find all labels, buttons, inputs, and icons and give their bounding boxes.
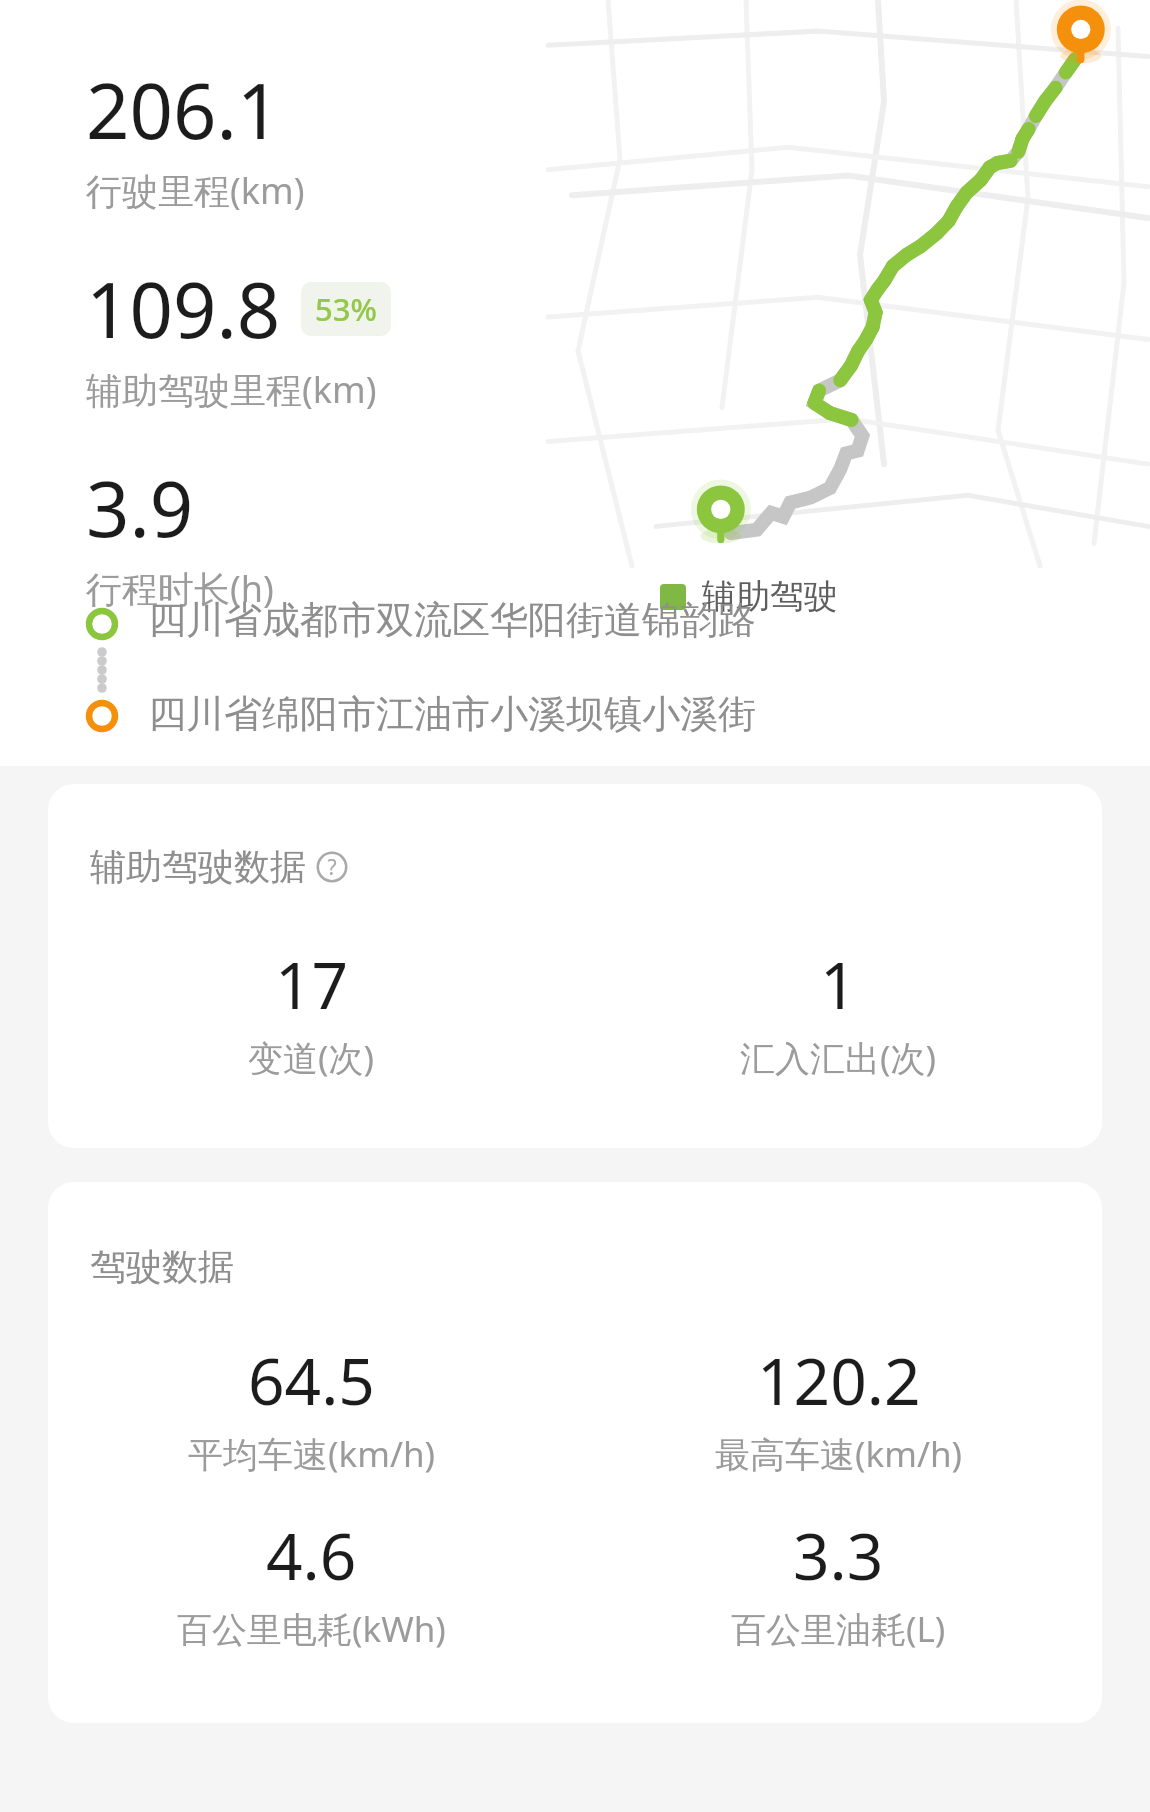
- other: 帮助说明: [316, 851, 348, 883]
- staticText: 辅助驾驶: [702, 575, 838, 618]
- staticText: 109.8: [86, 257, 281, 361]
- staticText: 17: [275, 941, 349, 1028]
- button[interactable]: 驾驶数据: [48, 1182, 1102, 1723]
- staticText: 4.6: [266, 1512, 357, 1599]
- button[interactable]: 64.5: [48, 1337, 575, 1478]
- staticText: 百公里电耗(kWh): [177, 1605, 446, 1653]
- button[interactable]: 4.6: [48, 1512, 575, 1653]
- staticText: 64.5: [248, 1337, 375, 1424]
- staticText: 汇入汇出(次): [740, 1034, 937, 1082]
- staticText: 四川省绵阳市江油市小溪坝镇小溪街: [148, 690, 756, 738]
- button[interactable]: 辅助驾驶数据: [48, 784, 1102, 1148]
- button[interactable]: 辅助驾驶数据: [90, 844, 348, 889]
- staticText: 行驶里程(km): [86, 166, 305, 215]
- staticText: 1: [820, 941, 857, 1028]
- staticText: 3.3: [793, 1512, 884, 1599]
- staticText: 最高车速(km/h): [715, 1430, 963, 1478]
- staticText: 辅助驾驶里程(km): [86, 365, 377, 414]
- staticText: 行程时长(h): [86, 564, 274, 613]
- staticText: 平均车速(km/h): [188, 1430, 436, 1478]
- button[interactable]: 3.3: [575, 1512, 1102, 1653]
- button[interactable]: 120.2: [575, 1337, 1102, 1478]
- button[interactable]: 1: [575, 941, 1102, 1082]
- staticText: 变道(次): [248, 1034, 375, 1082]
- staticText: 四川省成都市双流区华阳街道锦韵路: [148, 596, 756, 644]
- staticText: 53%: [315, 288, 377, 330]
- staticText: 辅助驾驶数据: [90, 844, 306, 889]
- button[interactable]: 辅助驾驶: [660, 575, 838, 618]
- staticText: 120.2: [757, 1337, 921, 1424]
- staticText: ?: [327, 853, 337, 882]
- staticText: 百公里油耗(L): [731, 1605, 946, 1653]
- staticText: 3.9: [86, 456, 194, 560]
- button[interactable]: 行程路线地图: [548, 0, 1148, 566]
- staticText: 206.1: [86, 58, 281, 162]
- staticText: 驾驶数据: [90, 1244, 234, 1289]
- button[interactable]: 17: [48, 941, 575, 1082]
